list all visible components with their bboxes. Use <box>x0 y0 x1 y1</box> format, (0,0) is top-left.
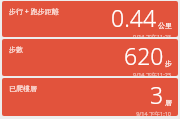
button[interactable]: 步數 <box>2 39 178 76</box>
staticText: 9/14 下午1:10 <box>136 110 171 116</box>
staticText: 層 <box>165 98 172 107</box>
staticText: 步行 + 跑步距離 <box>9 7 59 17</box>
staticText: 0.44 <box>111 2 157 33</box>
staticText: 公里 <box>158 21 172 30</box>
button[interactable]: 步行 + 跑步距離 <box>2 1 178 37</box>
staticText: 步數 <box>9 45 23 54</box>
staticText: 步 <box>165 59 172 68</box>
staticText: 620 <box>124 40 164 71</box>
staticText: 9/14 下午11:23 <box>133 33 171 37</box>
staticText: 9/14 下午11:23 <box>133 71 171 76</box>
button[interactable]: 已爬樓層 <box>2 78 178 116</box>
staticText: 3 <box>150 79 164 110</box>
staticText: 已爬樓層 <box>9 84 37 93</box>
